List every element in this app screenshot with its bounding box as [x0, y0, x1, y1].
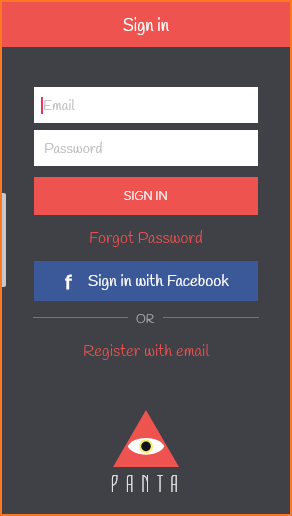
- staticText: Sign in: [123, 15, 169, 38]
- staticText: f: [65, 270, 72, 293]
- button[interactable]: Register with email: [71, 336, 222, 368]
- button[interactable]: Facebook: [34, 261, 258, 301]
- staticText: SIGN IN: [124, 189, 168, 204]
- button[interactable]: SIGN IN: [34, 177, 258, 215]
- button[interactable]: Forgot Password: [77, 223, 215, 255]
- staticText: Email: [43, 96, 75, 115]
- staticText: Password: [44, 139, 103, 158]
- other: Facebook: [64, 270, 73, 293]
- staticText: PANTA: [111, 470, 187, 497]
- button[interactable]: Password: [34, 130, 258, 166]
- staticText: Register with email: [83, 341, 210, 363]
- staticText: Sign in with Facebook: [88, 271, 229, 293]
- staticText: OR: [136, 312, 155, 326]
- button[interactable]: Email: [34, 87, 258, 123]
- staticText: Forgot Password: [89, 228, 203, 250]
